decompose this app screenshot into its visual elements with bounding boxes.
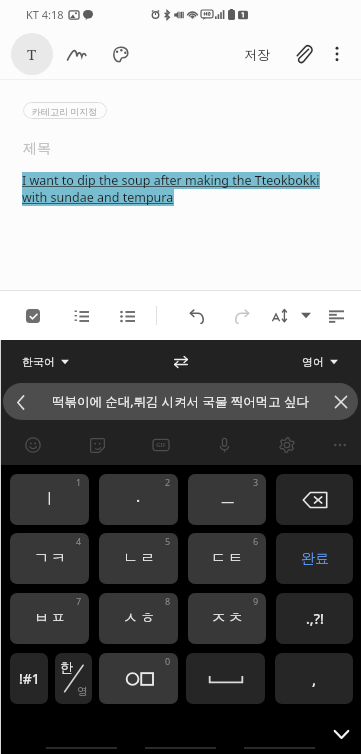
button[interactable]: 한영 — [55, 653, 92, 704]
staticText: 1 — [76, 476, 82, 488]
staticText: KT 4:18 — [26, 7, 64, 22]
button[interactable]: space — [186, 653, 265, 704]
staticText: 완료 — [301, 550, 329, 568]
staticText: 4 — [76, 535, 82, 547]
button[interactable]: ㅡ — [188, 474, 266, 525]
button[interactable]: ㅂㅍ — [10, 593, 89, 644]
button[interactable]: ㄱㅋ — [10, 533, 89, 584]
button[interactable]: ㅈㅊ — [188, 593, 266, 644]
button[interactable]: Align — [320, 300, 352, 332]
staticText: 7 — [76, 595, 82, 607]
staticText: T — [27, 44, 37, 64]
staticText: 5 — [165, 535, 171, 547]
staticText: 한국어 — [22, 355, 55, 369]
button[interactable]: More options — [322, 39, 352, 69]
button[interactable]: 영어 — [294, 349, 361, 375]
button[interactable]: .,?! — [276, 593, 353, 644]
button[interactable]: Swap languages — [166, 347, 196, 377]
button[interactable]: ㄴㄹ — [99, 533, 178, 584]
staticText: , — [312, 669, 317, 689]
staticText: ㅡ — [220, 490, 235, 509]
staticText: 9 — [253, 595, 259, 607]
staticText: !#1 — [19, 669, 40, 688]
button[interactable]: Hide keyboard — [329, 722, 353, 746]
staticText: 2 — [165, 476, 171, 488]
staticText: 카테고리 미지정 — [32, 105, 98, 117]
button[interactable]: Sticker — [81, 429, 113, 461]
button[interactable]: 카테고리 미지정 — [23, 102, 107, 119]
staticText: 3 — [253, 476, 259, 488]
staticText: ㄱㅋ — [33, 549, 67, 568]
staticText: ㅂㅍ — [33, 609, 67, 628]
button[interactable]: ㅇㅁ — [99, 653, 178, 704]
staticText: · — [136, 490, 141, 510]
button[interactable]: 완료 — [276, 533, 353, 584]
staticText: with sundae and tempura — [22, 189, 174, 206]
staticText: 저장 — [244, 46, 270, 62]
staticText: I want to dip the soup after making the … — [22, 172, 320, 189]
button[interactable]: More — [324, 429, 356, 461]
staticText: .,?! — [306, 609, 324, 628]
button[interactable]: Close — [324, 385, 358, 419]
staticText: 0 — [165, 655, 171, 667]
staticText: ㅣ — [42, 490, 57, 509]
staticText: ㄷㅌ — [210, 549, 244, 568]
button[interactable]: Settings — [271, 429, 303, 461]
staticText: 6 — [253, 535, 259, 547]
button[interactable]: Redo — [226, 300, 258, 332]
button[interactable]: ⌫ — [276, 474, 353, 525]
staticText: 한 — [60, 659, 73, 675]
staticText: 8 — [165, 595, 171, 607]
button[interactable]: GIF — [145, 429, 177, 461]
staticText: 제목 — [23, 140, 51, 158]
button[interactable]: Previous suggestion — [3, 385, 37, 419]
button[interactable]: Voice input — [208, 429, 240, 461]
button[interactable]: · — [99, 474, 178, 525]
button[interactable]: , — [275, 653, 353, 704]
button[interactable]: Attach — [286, 37, 320, 71]
button[interactable]: 저장 — [238, 38, 276, 70]
button[interactable]: Handwriting — [55, 33, 97, 75]
button[interactable]: Drawing — [99, 33, 141, 75]
button[interactable]: Undo — [181, 300, 213, 332]
button[interactable]: Bulleted list — [111, 300, 143, 332]
staticText: GIF — [156, 441, 166, 449]
button[interactable]: Checklist — [17, 300, 49, 332]
button[interactable] — [272, 300, 311, 331]
staticText: 영 — [77, 684, 88, 698]
staticText: 영어 — [302, 355, 324, 369]
staticText: ㅅㅎ — [122, 609, 156, 628]
staticText: 떡볶이에 순대,튀김 시켜서 국물 찍어먹고 싶다 — [52, 393, 310, 410]
button[interactable]: !#1 — [10, 653, 48, 704]
staticText: ㄴㄹ — [122, 549, 156, 568]
button[interactable]: ㅅㅎ — [99, 593, 178, 644]
button[interactable]: Numbered list — [65, 300, 97, 332]
button[interactable]: ㅣ — [10, 474, 89, 525]
button[interactable]: ㄷㅌ — [188, 533, 266, 584]
button[interactable]: Text mode — [11, 33, 53, 75]
staticText: ㅈㅊ — [210, 609, 244, 628]
button[interactable]: 한국어 — [0, 349, 77, 375]
button[interactable]: Emoji — [17, 429, 49, 461]
